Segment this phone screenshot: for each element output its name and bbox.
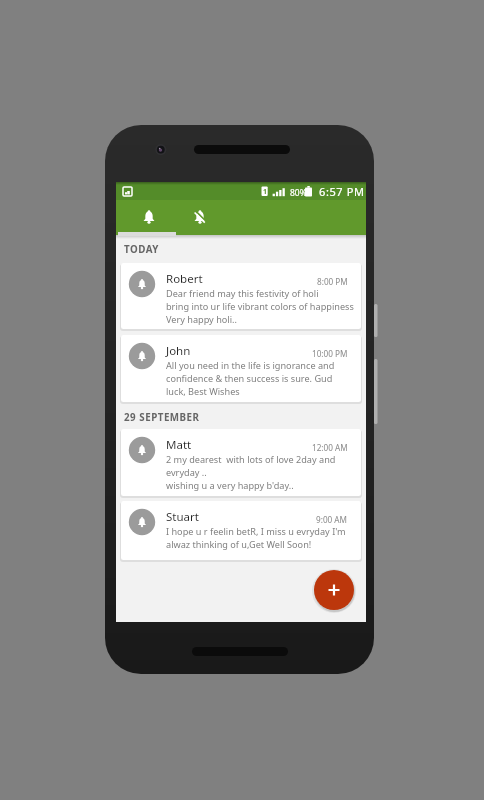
staticText: 2 my dearest with lots of love 2day and xyxy=(166,453,336,465)
button[interactable]: Matt xyxy=(121,429,361,496)
staticText: 1 xyxy=(263,187,267,196)
staticText: 6:57 PM xyxy=(319,184,365,199)
button[interactable]: Robert xyxy=(121,263,361,329)
staticText: 29 SEPTEMBER xyxy=(124,411,200,424)
button[interactable]: John xyxy=(121,335,361,402)
staticText: Stuart xyxy=(166,509,199,525)
staticText: Robert xyxy=(166,271,203,287)
staticText: All you need in the life is ignorance an… xyxy=(166,359,335,371)
staticText: Matt xyxy=(166,437,192,453)
staticText: confidence & then success is sure. Gud xyxy=(166,372,333,384)
button[interactable] xyxy=(175,201,227,231)
staticText: luck, Best Wishes xyxy=(166,385,240,397)
staticText: bring into ur life vibrant colors of hap… xyxy=(166,300,354,312)
button[interactable] xyxy=(314,570,354,610)
button[interactable]: Stuart xyxy=(121,501,361,560)
staticText: John xyxy=(166,343,191,359)
staticText: alwaz thinking of u,Get Well Soon! xyxy=(166,538,312,550)
staticText: 9:00 AM xyxy=(316,514,348,525)
staticText: evryday .. xyxy=(166,466,207,478)
staticText: wishing u a very happy b'day.. xyxy=(166,479,294,491)
button[interactable] xyxy=(123,201,175,231)
staticText: 8:00 PM xyxy=(317,276,348,287)
staticText: 80% xyxy=(290,187,307,199)
staticText: Very happy holi.. xyxy=(166,313,237,325)
staticText: TODAY xyxy=(124,243,160,256)
staticText: 10:00 PM xyxy=(312,348,348,359)
staticText: Dear friend may this festivity of holi xyxy=(166,287,319,299)
staticText: I hope u r feelin betR, I miss u evryday… xyxy=(166,525,346,537)
staticText: 12:00 AM xyxy=(312,442,348,453)
